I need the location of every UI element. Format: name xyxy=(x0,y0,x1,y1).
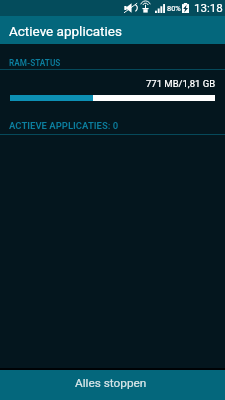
staticText: Actieve applicaties xyxy=(9,23,122,39)
button[interactable]: Alles stoppen xyxy=(0,370,225,400)
staticText: 13:18 xyxy=(194,1,223,15)
staticText: 771 MB/1,81 GB xyxy=(146,78,216,89)
staticText: Alles stoppen xyxy=(75,376,147,390)
staticText: RAM-STATUS xyxy=(9,58,61,68)
staticText: ACTIEVE APPLICATIES: 0 xyxy=(9,120,119,131)
staticText: 80% xyxy=(167,4,181,13)
